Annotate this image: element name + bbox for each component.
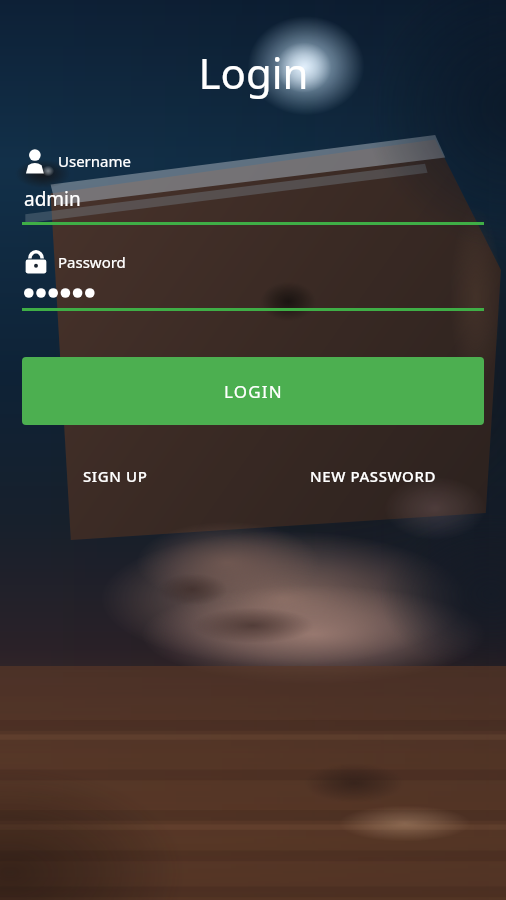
button[interactable]: SIGN UP (83, 466, 148, 486)
staticText: SIGN UP (83, 466, 148, 486)
staticText: Username (58, 151, 131, 171)
button[interactable]: LOGIN (22, 357, 484, 425)
other: Username (22, 148, 50, 174)
staticText: Password (58, 252, 126, 272)
staticText: Login (198, 44, 309, 101)
staticText: NEW PASSWORD (310, 466, 437, 486)
button[interactable]: Password (22, 247, 484, 311)
button[interactable]: NEW PASSWORD (310, 466, 437, 486)
staticText: admin (24, 186, 81, 212)
other: Password (22, 247, 50, 277)
button[interactable]: Username (22, 148, 484, 225)
staticText: LOGIN (224, 380, 283, 403)
